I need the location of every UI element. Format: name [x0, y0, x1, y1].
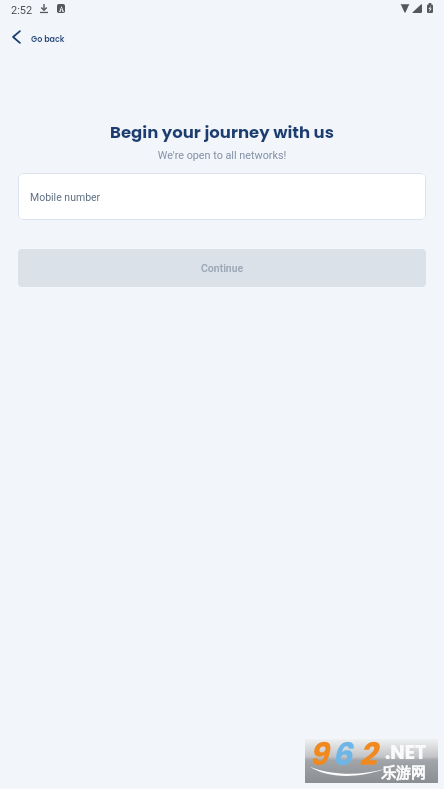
button[interactable]: Go back [6, 27, 73, 51]
staticText: 2 [359, 732, 377, 775]
staticText: 乐游网 [381, 764, 426, 783]
staticText: Go back [31, 34, 65, 45]
other: 962.NET watermark [305, 739, 438, 783]
staticText: Continue [201, 262, 244, 274]
staticText: .NET [385, 739, 427, 766]
staticText: 2:52 [11, 4, 33, 17]
other: Go back [12, 30, 21, 44]
button[interactable]: Mobile number [18, 173, 426, 220]
staticText: Begin your journey with us [0, 121, 444, 144]
button[interactable]: Continue [18, 249, 426, 287]
staticText: Mobile number [30, 191, 101, 203]
staticText: We're open to all networks! [0, 149, 444, 162]
staticText: 9 [309, 732, 329, 775]
staticText: 6 [332, 732, 352, 775]
